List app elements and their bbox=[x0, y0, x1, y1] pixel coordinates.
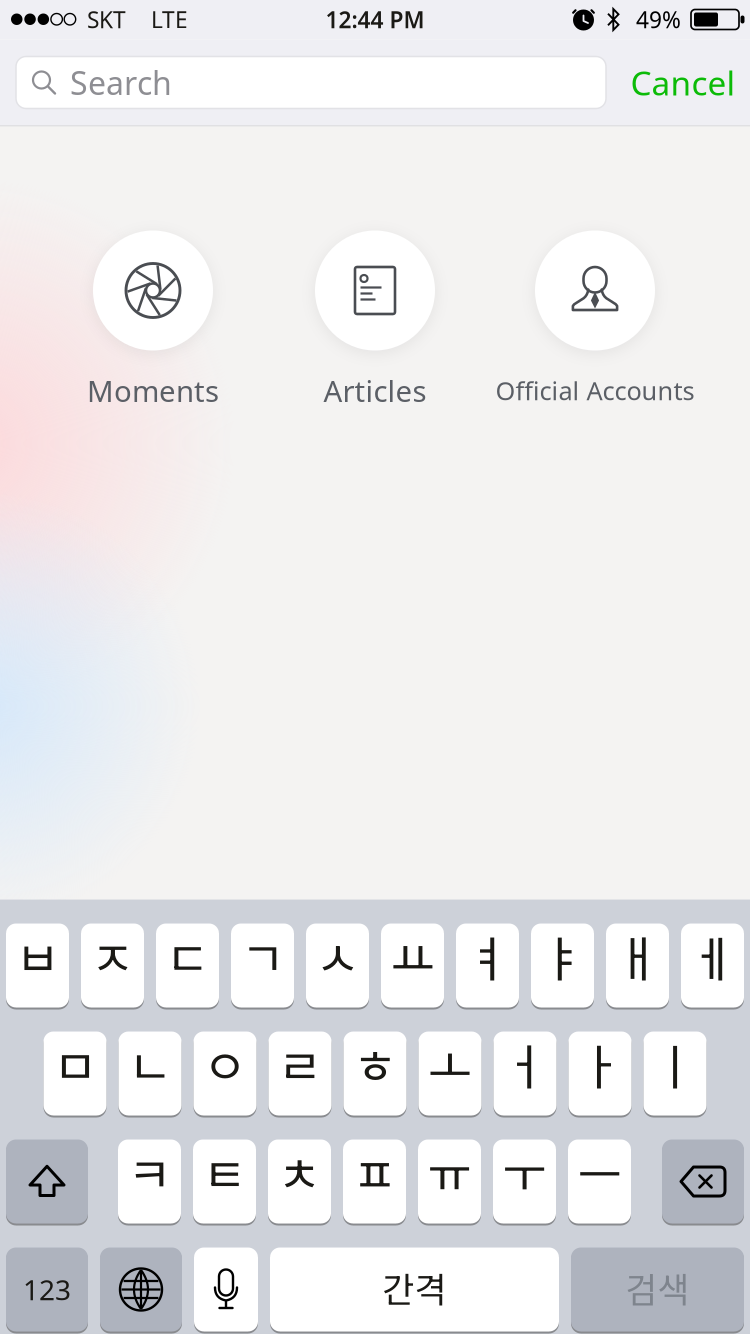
staticText: Moments bbox=[87, 371, 219, 410]
staticText: ㅐ bbox=[615, 921, 659, 990]
button[interactable]: ㅅ bbox=[306, 922, 369, 1008]
button[interactable]: ㅋ bbox=[118, 1138, 181, 1224]
button[interactable]: Dictation bbox=[194, 1246, 258, 1332]
staticText: ㄴ bbox=[128, 1029, 172, 1098]
button[interactable]: ㅛ bbox=[381, 922, 444, 1008]
staticText: ㅏ bbox=[578, 1029, 622, 1098]
staticText: ㅑ bbox=[540, 921, 584, 990]
button[interactable]: Cancel bbox=[616, 39, 750, 125]
staticText: Cancel bbox=[630, 60, 735, 105]
button[interactable]: ㅜ bbox=[493, 1138, 556, 1224]
button[interactable]: Articles bbox=[265, 230, 485, 408]
button[interactable]: Official Accounts bbox=[485, 230, 705, 408]
button[interactable]: ㅣ bbox=[643, 1030, 706, 1116]
button[interactable]: ㅠ bbox=[418, 1138, 481, 1224]
button[interactable]: ㅐ bbox=[606, 922, 669, 1008]
staticText: ㅕ bbox=[465, 921, 509, 990]
staticText: ㅅ bbox=[315, 921, 359, 990]
button[interactable]: ㅗ bbox=[418, 1030, 481, 1116]
button[interactable]: ㅏ bbox=[568, 1030, 631, 1116]
button[interactable]: 123 bbox=[6, 1246, 88, 1332]
staticText: ㅓ bbox=[503, 1029, 547, 1098]
button[interactable]: 간격 bbox=[270, 1246, 559, 1332]
staticText: 12:44 PM bbox=[325, 4, 424, 34]
staticText: Search bbox=[70, 61, 172, 104]
staticText: ㅡ bbox=[577, 1137, 621, 1206]
staticText: ㄹ bbox=[278, 1029, 322, 1098]
staticText: ㅜ bbox=[502, 1137, 546, 1206]
staticText: ㅠ bbox=[427, 1137, 471, 1206]
staticText: ㅍ bbox=[352, 1137, 396, 1206]
button[interactable]: ㅍ bbox=[343, 1138, 406, 1224]
button[interactable]: ㅎ bbox=[343, 1030, 406, 1116]
staticText: 123 bbox=[23, 1271, 71, 1308]
staticText: SKT bbox=[87, 4, 126, 34]
button[interactable]: Delete bbox=[662, 1138, 744, 1224]
button[interactable]: ㅓ bbox=[493, 1030, 556, 1116]
button[interactable]: Next keyboard bbox=[100, 1246, 182, 1332]
staticText: ㄷ bbox=[165, 921, 209, 990]
staticText: ㅎ bbox=[353, 1029, 397, 1098]
staticText: ㅣ bbox=[653, 1029, 697, 1098]
staticText: 간격 bbox=[382, 1262, 446, 1313]
staticText: ㅇ bbox=[203, 1029, 247, 1098]
staticText: ㅁ bbox=[53, 1029, 97, 1098]
button[interactable]: ㅡ bbox=[568, 1138, 631, 1224]
staticText: ㅂ bbox=[15, 921, 59, 990]
staticText: Official Accounts bbox=[495, 374, 694, 407]
button[interactable]: ㅂ bbox=[6, 922, 69, 1008]
staticText: Articles bbox=[323, 371, 426, 410]
button[interactable]: ㄹ bbox=[268, 1030, 331, 1116]
staticText: ㅛ bbox=[390, 921, 434, 990]
staticText: LTE bbox=[151, 4, 188, 34]
staticText: ㅗ bbox=[428, 1029, 472, 1098]
staticText: ㄱ bbox=[240, 921, 284, 990]
button[interactable]: ㄱ bbox=[231, 922, 294, 1008]
button[interactable]: ㅕ bbox=[456, 922, 519, 1008]
button[interactable]: ㄴ bbox=[118, 1030, 181, 1116]
staticText: 49% bbox=[636, 4, 681, 34]
button[interactable]: Moments bbox=[43, 230, 263, 408]
button[interactable]: ㅊ bbox=[268, 1138, 331, 1224]
button[interactable]: ㅔ bbox=[681, 922, 744, 1008]
staticText: ㅋ bbox=[127, 1137, 171, 1206]
button[interactable]: ㄷ bbox=[156, 922, 219, 1008]
button[interactable]: Shift bbox=[6, 1138, 88, 1224]
button[interactable]: Search bbox=[16, 56, 606, 108]
button[interactable]: ㅁ bbox=[43, 1030, 106, 1116]
button[interactable]: 검색 bbox=[571, 1246, 744, 1332]
staticText: ㅈ bbox=[90, 921, 134, 990]
staticText: ㅔ bbox=[690, 921, 734, 990]
staticText: ㅊ bbox=[277, 1137, 321, 1206]
button[interactable]: ㅇ bbox=[193, 1030, 256, 1116]
staticText: ㅌ bbox=[202, 1137, 246, 1206]
staticText: 검색 bbox=[625, 1262, 689, 1313]
button[interactable]: ㅑ bbox=[531, 922, 594, 1008]
button[interactable]: ㅌ bbox=[193, 1138, 256, 1224]
button[interactable]: ㅈ bbox=[81, 922, 144, 1008]
